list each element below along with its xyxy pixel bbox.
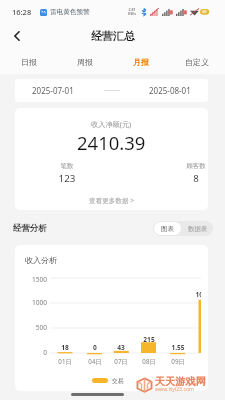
staticText: 18 xyxy=(50,343,81,352)
staticText: 43 xyxy=(105,343,137,352)
button[interactable]: 月报 xyxy=(113,50,169,74)
staticText: 数据表 xyxy=(188,225,208,233)
staticText: 0 xyxy=(17,348,47,357)
staticText: 0 xyxy=(79,343,111,352)
staticText: 收入分析 xyxy=(25,255,57,265)
staticText: 2410.39 xyxy=(77,130,146,155)
staticText: 顾客数 xyxy=(176,162,208,170)
staticText: 07日 xyxy=(105,357,137,365)
staticText: 自定义 xyxy=(185,57,209,67)
staticText: 2025-08-01 xyxy=(149,85,191,96)
button[interactable]: 周报 xyxy=(57,50,113,74)
button[interactable]: 图表 xyxy=(154,222,181,235)
staticText: 2025-07-01 xyxy=(32,85,74,96)
staticText: 经营分析 xyxy=(13,223,47,234)
staticText: 16:28 xyxy=(12,7,32,17)
staticText: 01日 xyxy=(50,357,81,365)
staticText: 笔数 xyxy=(47,162,87,170)
staticText: 08日 xyxy=(133,357,165,365)
staticText: 1500 xyxy=(17,275,47,284)
button[interactable]: Back xyxy=(6,22,28,50)
staticText: 周报 xyxy=(77,57,93,67)
button[interactable]: 2025-07-01 xyxy=(15,79,208,102)
staticText: 123 xyxy=(47,172,87,185)
staticText: 月报 xyxy=(133,57,149,67)
button[interactable]: 日报 xyxy=(0,50,57,74)
staticText: 1064 xyxy=(187,290,201,299)
staticText: 1.55 xyxy=(162,343,194,352)
staticText: 经营汇总 xyxy=(91,29,135,43)
staticText: 2.81 KB/s xyxy=(128,7,136,16)
staticText: 查看更多数据 > xyxy=(89,196,135,205)
staticText: 交易 xyxy=(112,377,124,384)
button[interactable]: 查看更多数据 > xyxy=(89,196,135,205)
button[interactable]: 数据表 xyxy=(182,221,213,236)
button[interactable]: 自定义 xyxy=(169,50,225,74)
staticText: www.ttyl23.com xyxy=(155,385,194,392)
staticText: 04日 xyxy=(79,357,111,365)
staticText: 天天游戏网 xyxy=(155,375,206,388)
staticText: 图表 xyxy=(161,225,174,233)
staticText: 日报 xyxy=(21,57,37,67)
staticText: 1000 xyxy=(17,298,47,307)
staticText: 8 xyxy=(176,172,208,185)
staticText: 500 xyxy=(17,323,47,332)
staticText: 雷电黄色预警 xyxy=(50,8,90,16)
staticText: 215 xyxy=(133,335,165,344)
staticText: 收入净额(元) xyxy=(91,119,132,129)
staticText: 09日 xyxy=(162,357,194,365)
